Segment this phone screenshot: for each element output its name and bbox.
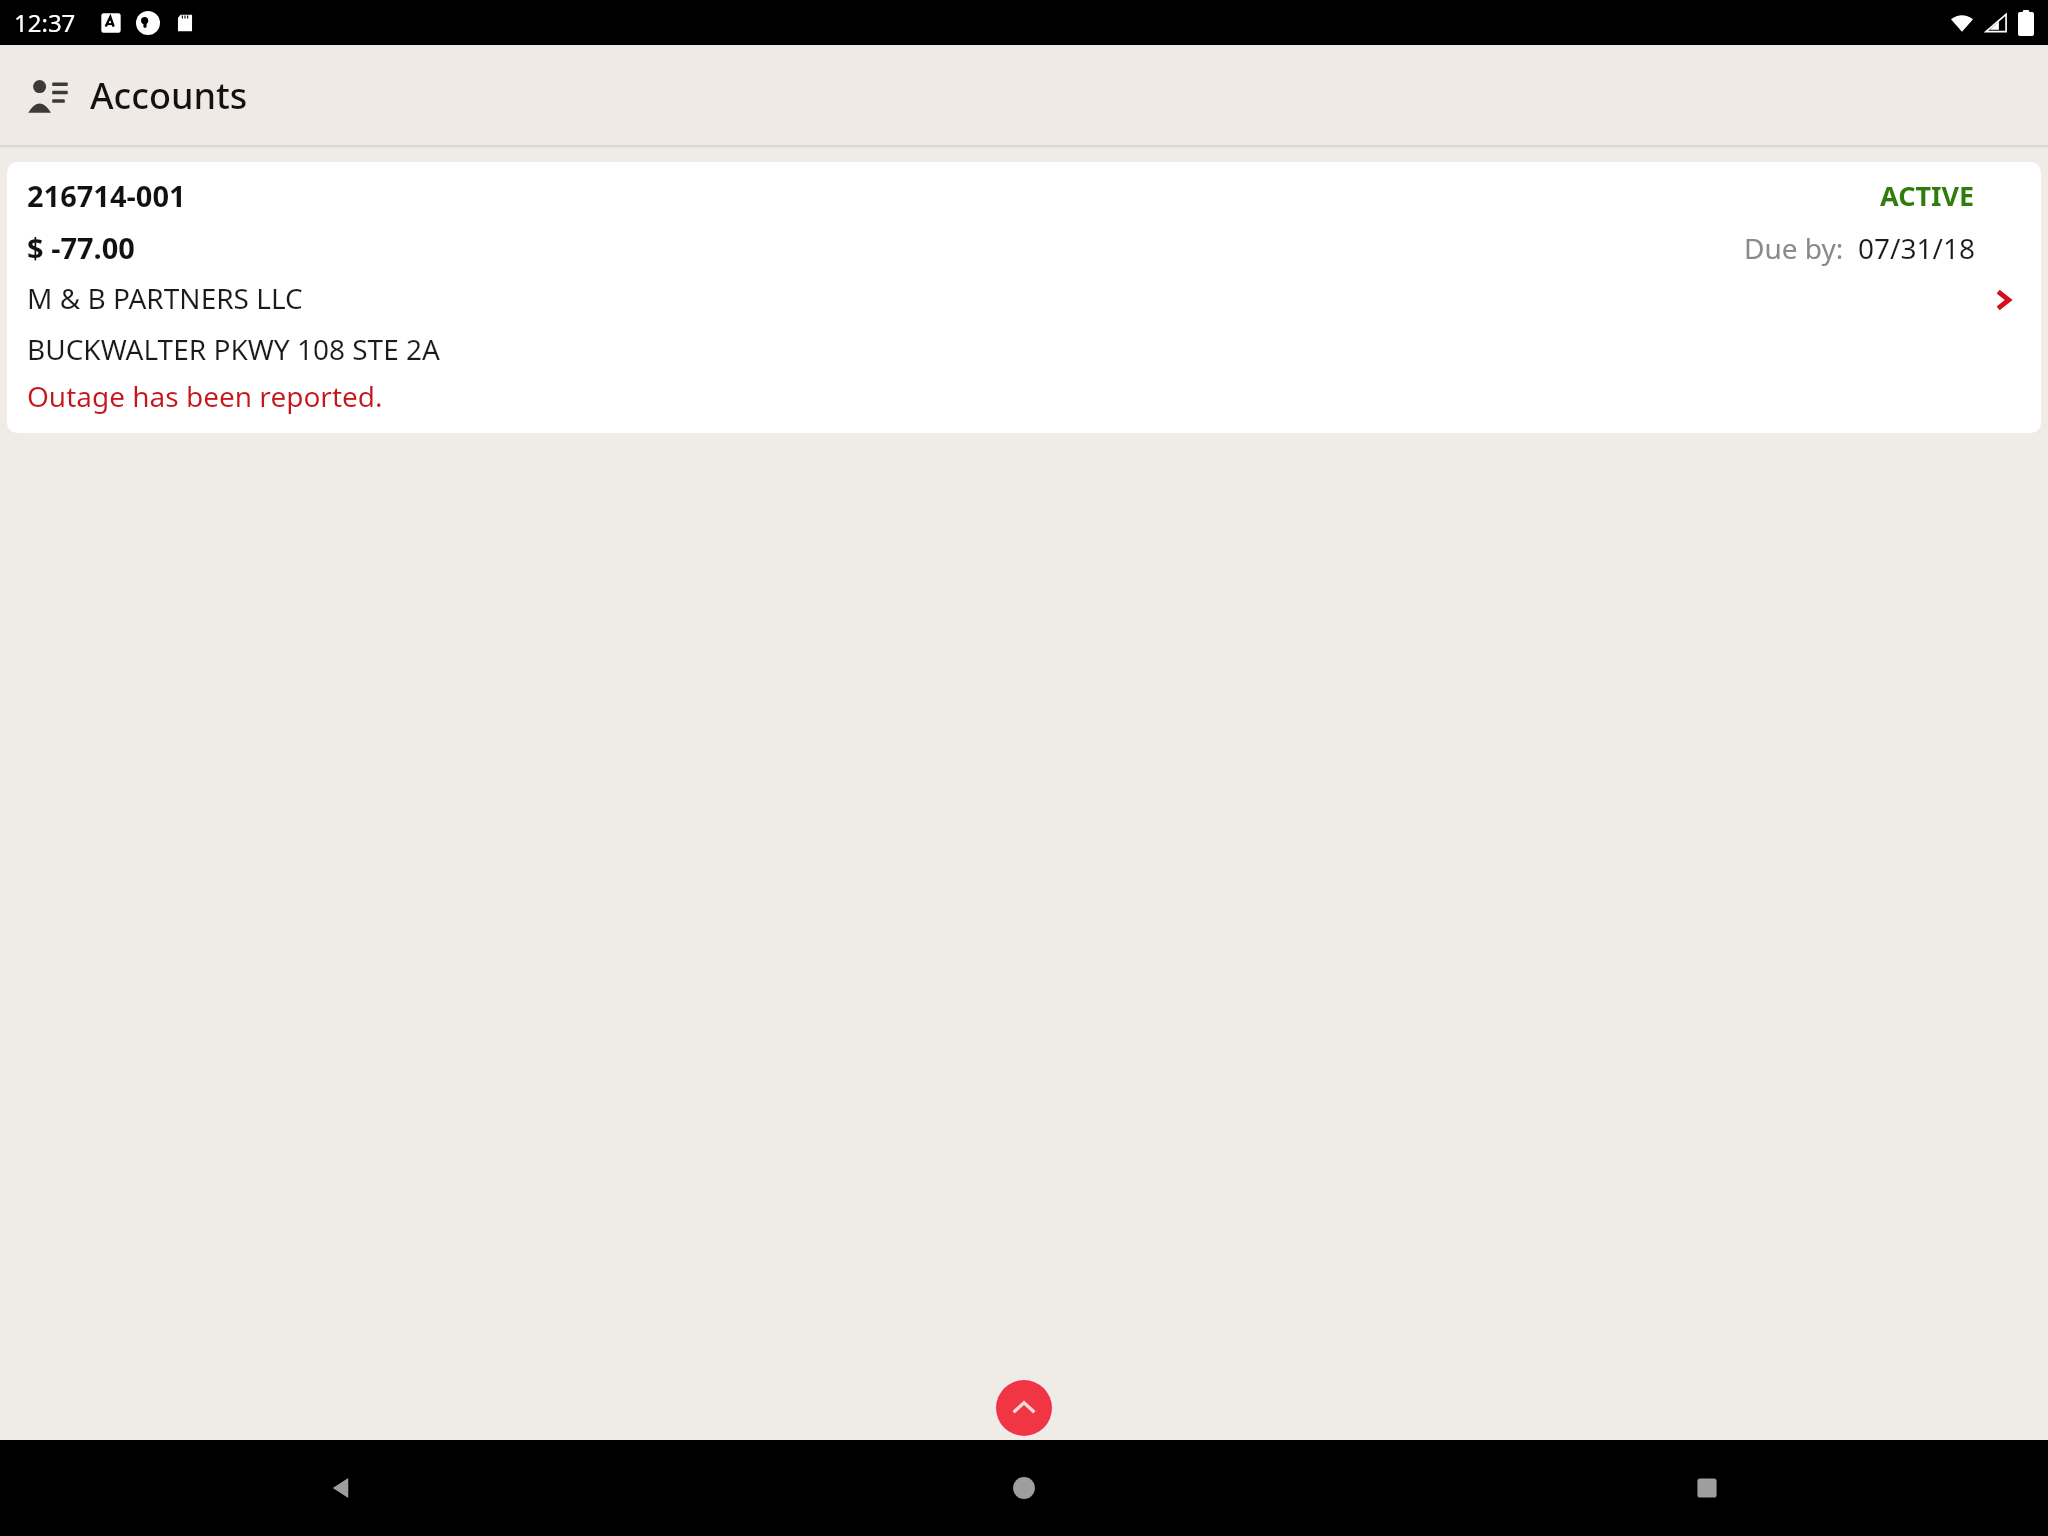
button[interactable]: Home xyxy=(682,1440,1365,1536)
button[interactable]: Open account details xyxy=(1983,280,2023,320)
button[interactable]: Recent apps xyxy=(1365,1440,2048,1536)
staticText: $ -77.00 xyxy=(27,228,135,267)
button[interactable]: Back xyxy=(0,1440,682,1536)
staticText: 216714-001 xyxy=(27,176,186,215)
staticText: BUCKWALTER PKWY 108 STE 2A xyxy=(27,330,440,368)
staticText: M & B PARTNERS LLC xyxy=(27,279,303,317)
staticText: Accounts xyxy=(90,71,248,120)
button[interactable]: Scroll to top xyxy=(996,1380,1052,1436)
button[interactable]: 216714-001 xyxy=(7,162,2041,433)
button[interactable]: Accounts xyxy=(20,67,76,123)
staticText: ACTIVE xyxy=(1880,177,1975,214)
staticText: Due by: xyxy=(1744,229,1844,267)
staticText: Outage has been reported. xyxy=(27,377,383,415)
staticText: 12:37 xyxy=(14,6,76,39)
staticText: 07/31/18 xyxy=(1858,229,1975,267)
